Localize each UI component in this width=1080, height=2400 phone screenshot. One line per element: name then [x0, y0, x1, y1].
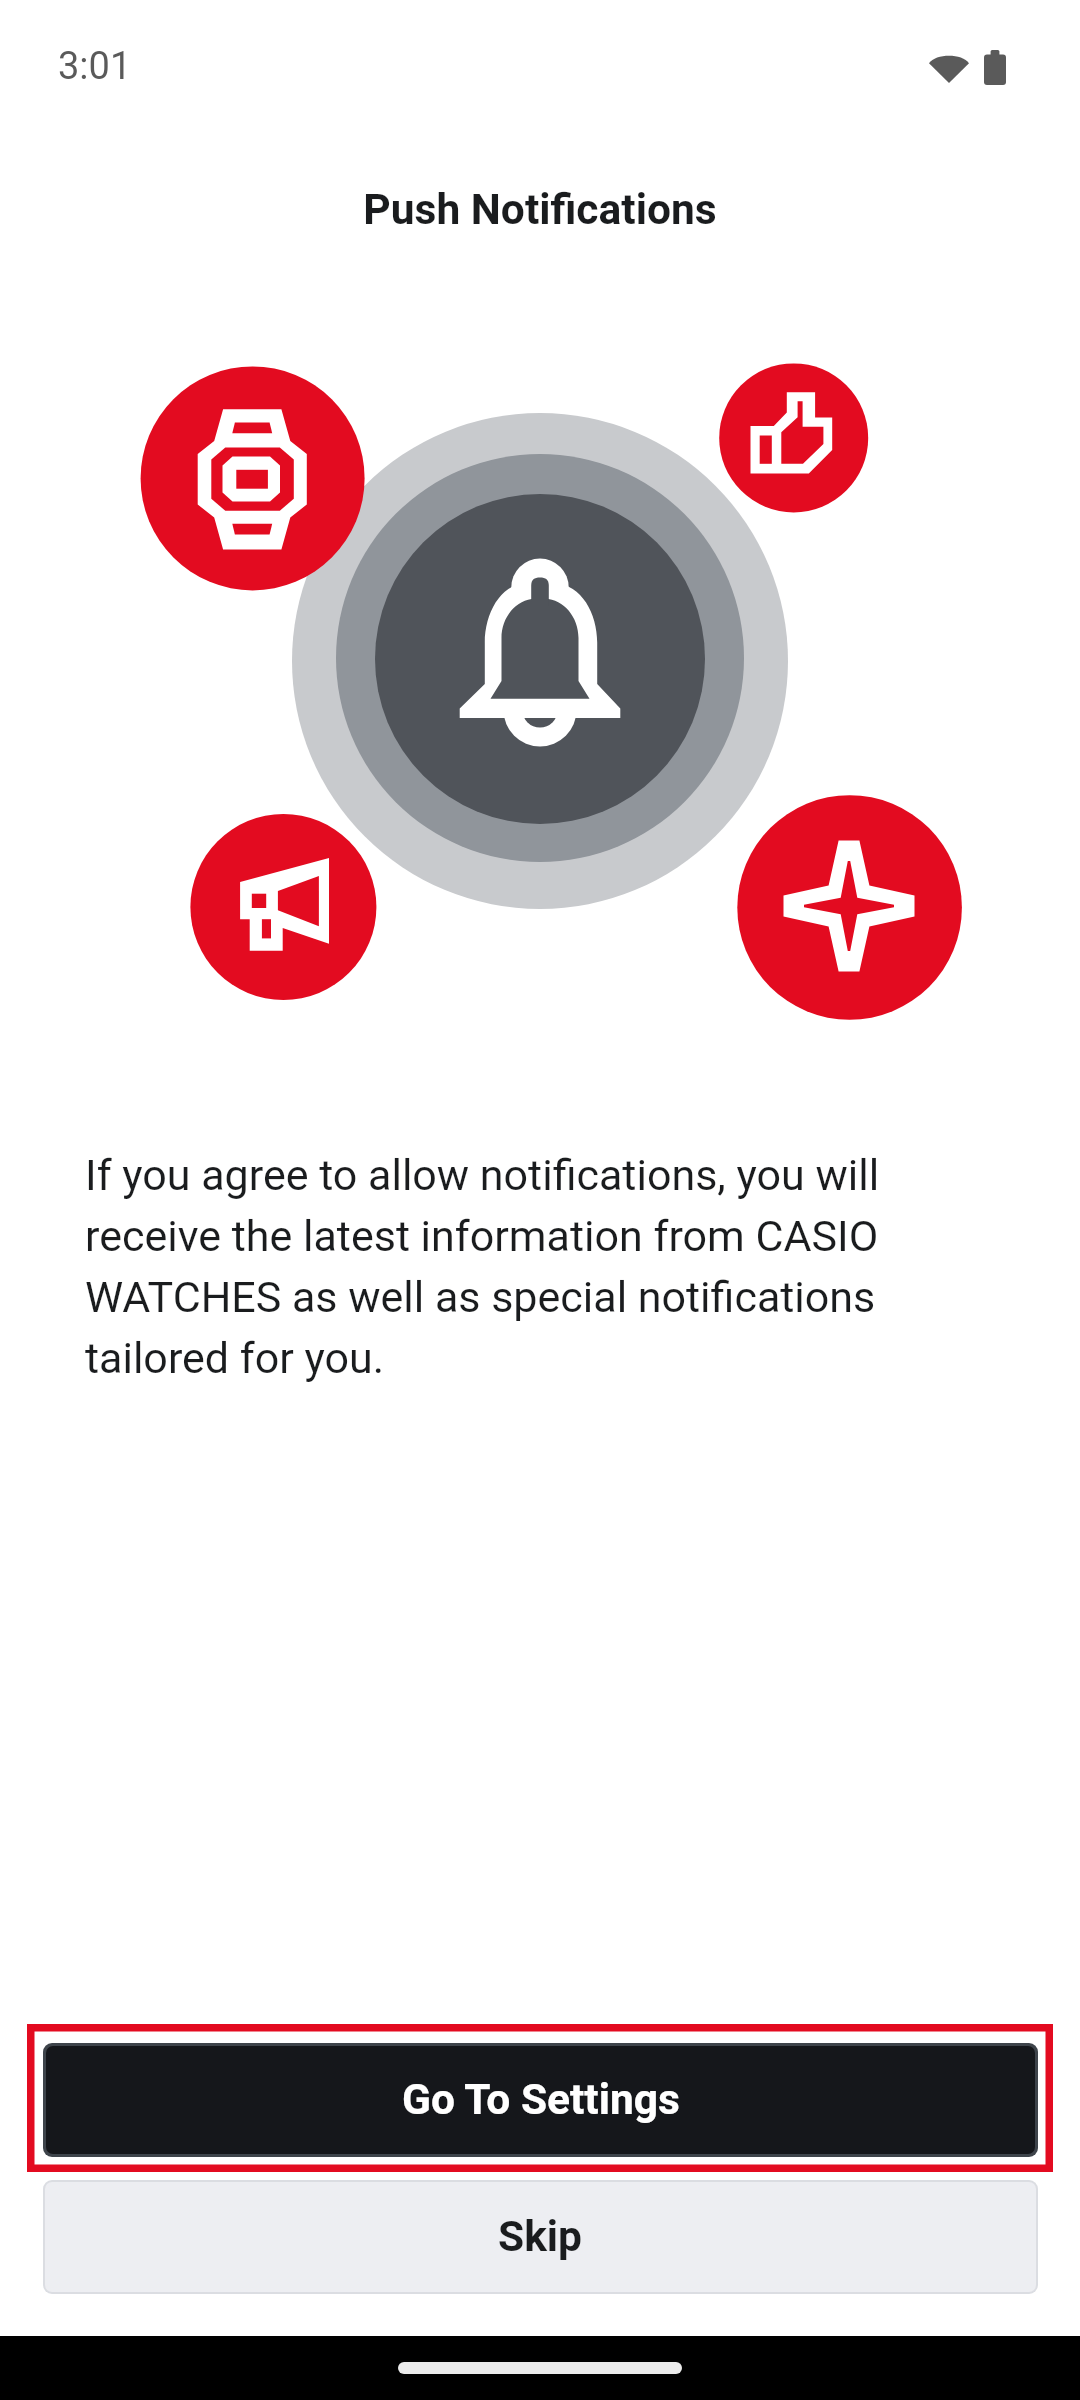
other: Wi-Fi	[929, 50, 969, 83]
staticText: Go To Settings	[402, 2075, 680, 2125]
staticText: 3:01	[58, 44, 132, 89]
button[interactable]: Skip	[45, 2182, 1036, 2292]
staticText: If you agree to allow notifications, you…	[85, 1150, 995, 1384]
button[interactable]: Go To Settings	[46, 2046, 1035, 2154]
staticText: Push Notifications	[0, 185, 1080, 235]
other: Battery	[984, 50, 1006, 85]
staticText: Skip	[498, 2212, 583, 2262]
